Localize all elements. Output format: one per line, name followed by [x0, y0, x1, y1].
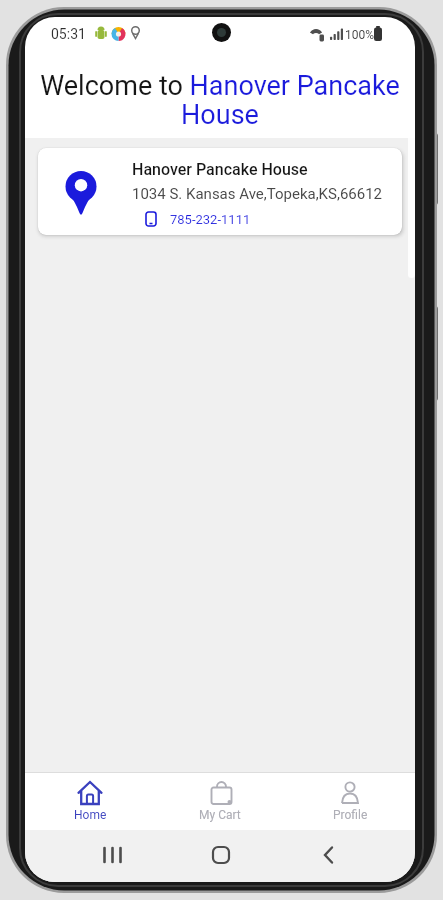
staticText: 100% [345, 28, 375, 42]
staticText: Profile [333, 808, 368, 822]
staticText: Hanover Pancake House [132, 160, 308, 179]
staticText: Home [74, 808, 107, 822]
staticText: 1034 S. Kansas Ave,Topeka,KS,66612 [132, 185, 383, 203]
staticText: My Cart [199, 808, 241, 822]
staticText: Welcome to Hanover Pancake House [25, 70, 415, 131]
staticText: 05:31 [51, 26, 86, 42]
staticText: 785-232-1111 [170, 212, 251, 227]
